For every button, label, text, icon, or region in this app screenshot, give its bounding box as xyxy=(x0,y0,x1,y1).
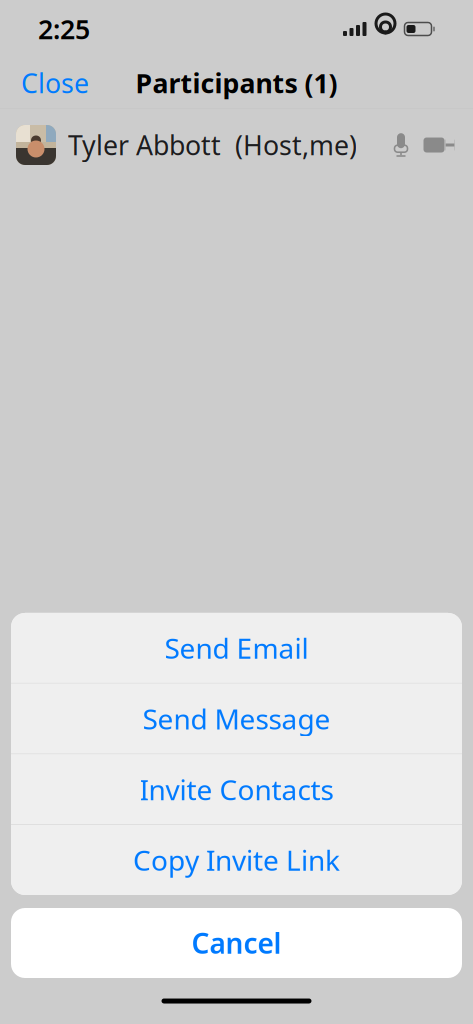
staticText: Send Message xyxy=(142,700,330,737)
staticText: Cancel xyxy=(191,924,281,962)
button[interactable]: Cancel xyxy=(11,908,462,978)
button[interactable]: Send Email xyxy=(11,613,462,683)
staticText: Close xyxy=(21,65,89,101)
staticText: Tyler Abbott (Host,me) xyxy=(68,127,357,163)
button[interactable]: Invite Contacts xyxy=(11,754,462,824)
staticText: Invite Contacts xyxy=(139,771,333,808)
staticText: 2:25 xyxy=(38,11,90,47)
staticText: Send Email xyxy=(164,629,308,666)
button[interactable]: Send Message xyxy=(11,684,462,754)
staticText: Participants (1) xyxy=(135,65,337,101)
button[interactable]: Copy Invite Link xyxy=(11,825,462,895)
button[interactable]: Close xyxy=(0,55,110,111)
staticText: Copy Invite Link xyxy=(133,841,340,879)
